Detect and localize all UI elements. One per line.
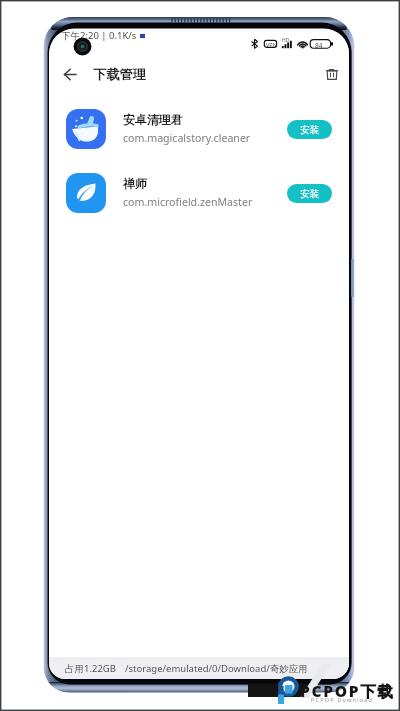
- button[interactable]: 禅师: [49, 161, 349, 225]
- staticText: /storage/emulated/0/Download/奇妙应用: [125, 662, 308, 675]
- button[interactable]: 安装: [287, 184, 332, 203]
- button[interactable]: Clear all downloads: [318, 60, 346, 88]
- staticText: 安装: [300, 188, 319, 200]
- staticText: 84: [315, 41, 323, 50]
- button[interactable]: 安卓清理君: [49, 97, 349, 161]
- staticText: 下载管理: [93, 66, 146, 83]
- staticText: VPN: [266, 41, 277, 48]
- staticText: 禅师: [123, 177, 147, 192]
- staticText: 下午2:20 | 0.1K/s: [61, 29, 137, 42]
- staticText: 安装: [300, 124, 319, 136]
- button[interactable]: 安装: [287, 120, 332, 139]
- staticText: 占用1.22GB: [65, 662, 116, 675]
- staticText: PCPOP下载: [300, 680, 395, 701]
- staticText: HD: [282, 37, 290, 44]
- staticText: com.magicalstory.cleaner: [123, 131, 251, 145]
- staticText: com.microfield.zenMaster: [123, 195, 253, 209]
- staticText: 安卓清理君: [123, 113, 183, 128]
- staticText: PCPOP Download: [311, 696, 374, 703]
- button[interactable]: Back: [56, 60, 84, 88]
